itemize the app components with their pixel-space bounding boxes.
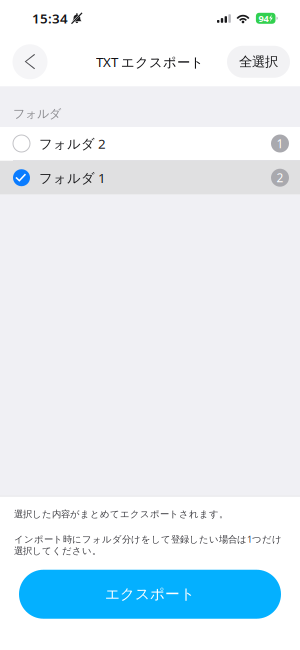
staticText: フォルダ 1 [39,169,106,187]
button[interactable]: フォルダ 1 [0,161,300,195]
staticText: 選択した内容がまとめてエクスポートされます。 [14,508,228,520]
staticText: 1 [276,135,283,151]
staticText: 15:34 [32,9,68,27]
staticText: エクスポート [105,585,195,603]
button[interactable]: Back [10,42,50,82]
staticText: 全選択 [239,54,278,70]
button[interactable]: エクスポート [19,570,281,619]
staticText: インポート時にフォルダ分けをして登録したい場合は1つだけ選択してください。 [14,533,282,557]
staticText: フォルダ 2 [39,135,106,152]
staticText: 2 [276,170,283,186]
staticText: 94 [258,12,268,24]
button[interactable]: 全選択 [227,46,290,78]
staticText: フォルダ [13,106,61,121]
staticText: TXT エクスポート [96,53,204,71]
button[interactable]: フォルダ 2 [0,127,300,161]
